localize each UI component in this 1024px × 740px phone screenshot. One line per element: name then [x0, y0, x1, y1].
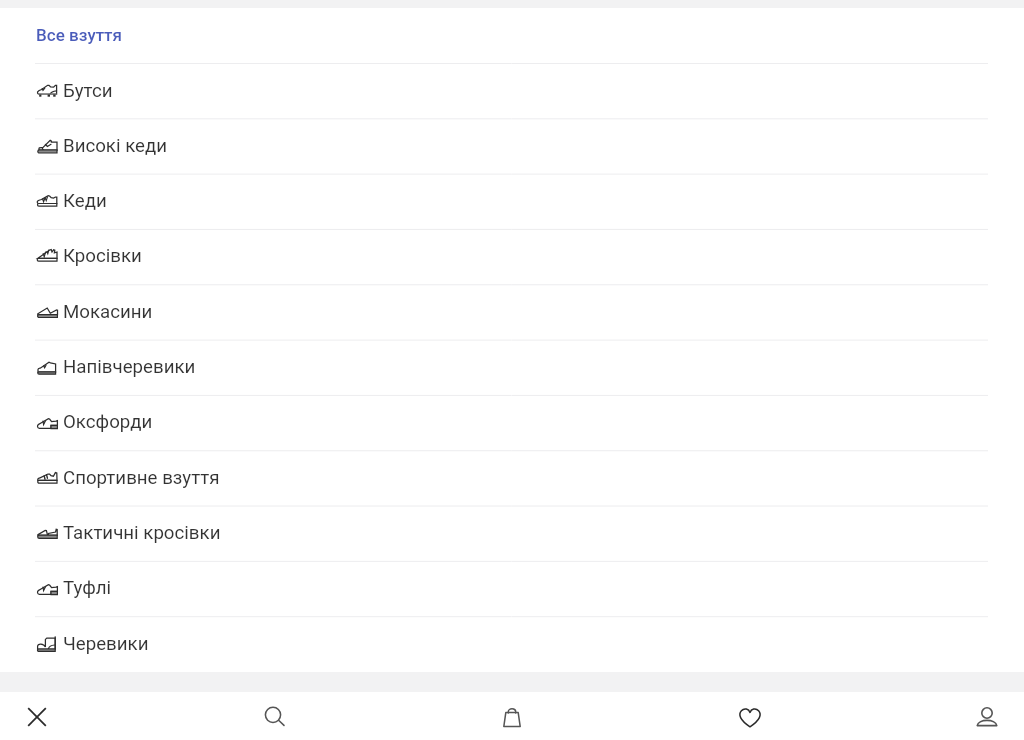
- button[interactable]: Profile: [963, 692, 1011, 740]
- button[interactable]: Кеди: [0, 174, 1024, 229]
- staticText: Оксфорди: [63, 411, 153, 433]
- button[interactable]: Все взуття: [0, 8, 1024, 64]
- button[interactable]: Бутси: [0, 64, 1024, 119]
- button[interactable]: Favorites: [726, 692, 774, 740]
- button[interactable]: Високі кеди: [0, 119, 1024, 174]
- staticText: Бутси: [63, 80, 113, 102]
- button[interactable]: Черевики: [0, 617, 1024, 672]
- button[interactable]: Cart: [488, 692, 536, 740]
- staticText: Спортивне взуття: [63, 467, 220, 489]
- button[interactable]: Кросівки: [0, 229, 1024, 284]
- button[interactable]: Напівчеревики: [0, 340, 1024, 395]
- button[interactable]: Мокасини: [0, 285, 1024, 340]
- button[interactable]: Оксфорди: [0, 395, 1024, 450]
- staticText: Мокасини: [63, 301, 153, 323]
- staticText: Черевики: [63, 633, 149, 655]
- button[interactable]: Тактичні кросівки: [0, 506, 1024, 561]
- staticText: Кросівки: [63, 245, 142, 267]
- staticText: Напівчеревики: [63, 356, 196, 378]
- button[interactable]: Search: [251, 692, 299, 740]
- button[interactable]: Туфлі: [0, 561, 1024, 616]
- staticText: Високі кеди: [63, 135, 168, 157]
- button[interactable]: Спортивне взуття: [0, 451, 1024, 506]
- staticText: Кеди: [63, 190, 107, 212]
- staticText: Все взуття: [36, 25, 122, 45]
- button[interactable]: Close: [13, 692, 61, 740]
- staticText: Туфлі: [63, 577, 111, 599]
- staticText: Тактичні кросівки: [63, 522, 221, 544]
